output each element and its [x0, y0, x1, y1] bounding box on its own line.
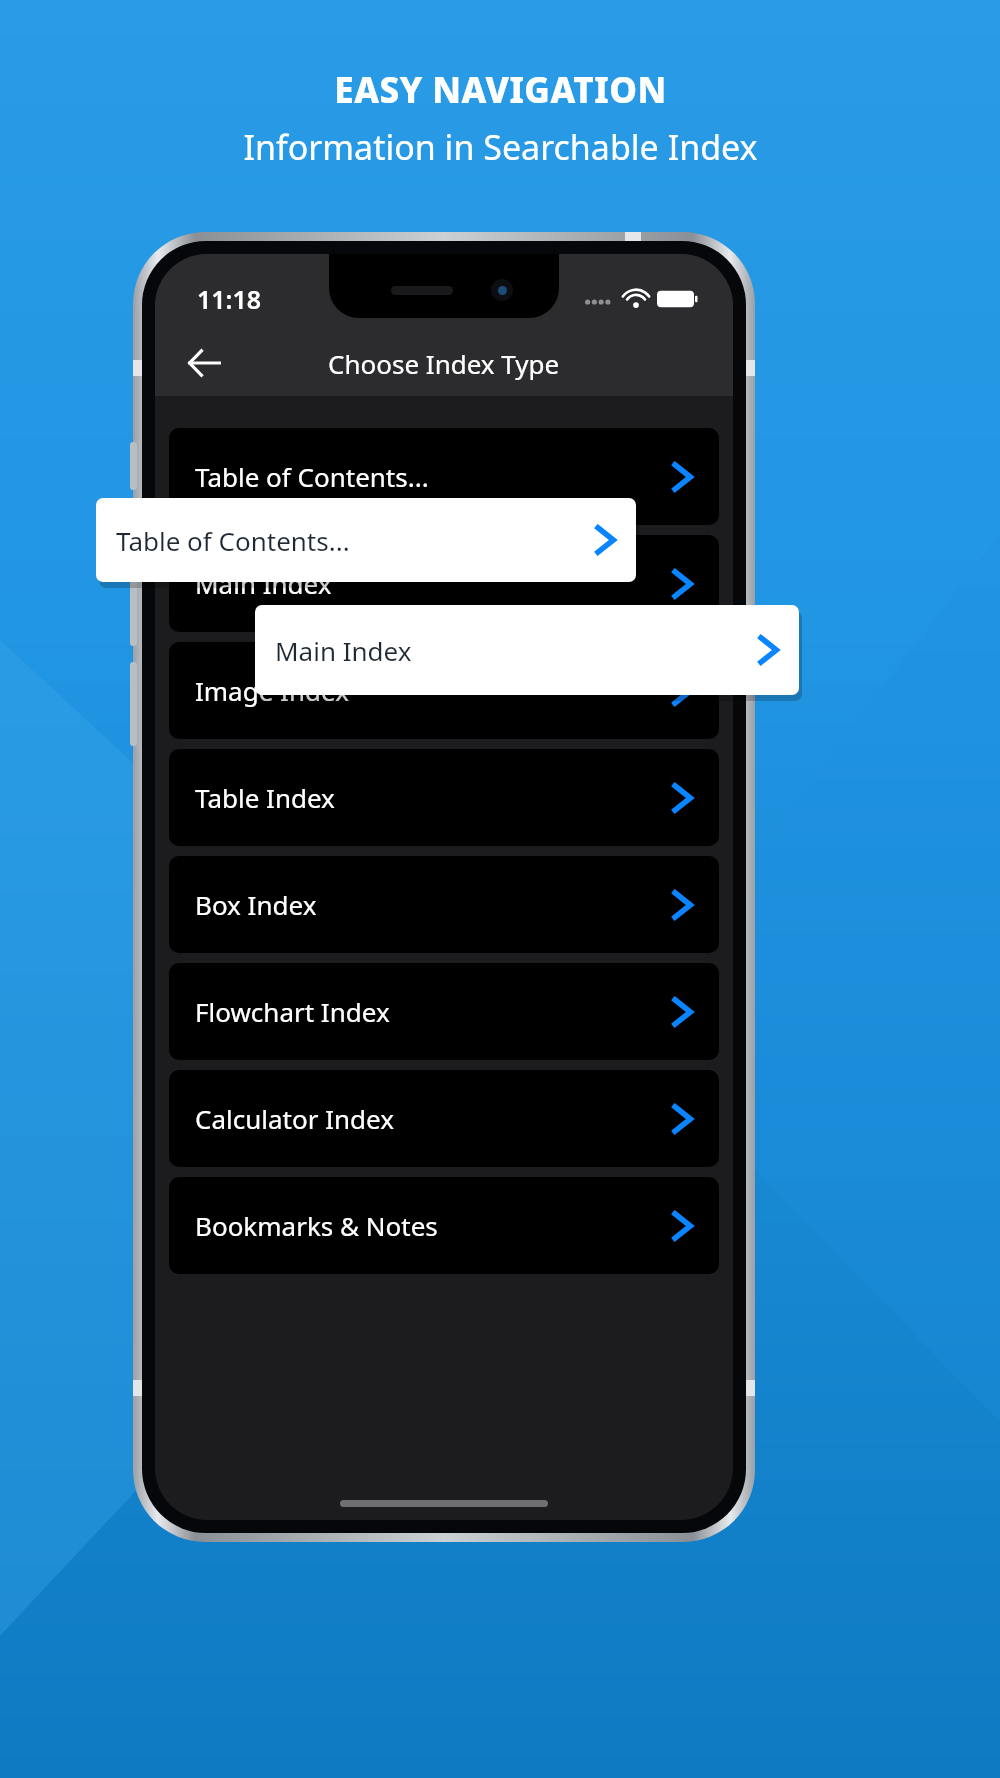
staticText: Box Index	[195, 887, 671, 922]
button[interactable]: Calculator Index	[169, 1070, 719, 1167]
staticText: Image Index	[195, 673, 671, 708]
staticText: Bookmarks & Notes	[195, 1208, 671, 1243]
button[interactable]: Main Index	[255, 605, 799, 695]
staticText: EASY NAVIGATION	[334, 66, 667, 114]
staticText: 11:18	[197, 282, 262, 316]
button[interactable]: Back	[177, 336, 231, 390]
staticText: Calculator Index	[195, 1101, 671, 1136]
button[interactable]: Main Index	[169, 535, 719, 632]
button[interactable]: Flowchart Index	[169, 963, 719, 1060]
button[interactable]: Image Index	[169, 642, 719, 739]
staticText: Table Index	[195, 780, 671, 815]
button[interactable]: Table Index	[169, 749, 719, 846]
staticText: Information in Searchable Index	[243, 124, 758, 170]
staticText: Main Index	[275, 633, 757, 668]
staticText: Flowchart Index	[195, 994, 671, 1029]
button[interactable]: Bookmarks & Notes	[169, 1177, 719, 1274]
staticText: Table of Contents...	[195, 459, 671, 494]
staticText: Choose Index Type	[328, 346, 560, 381]
button[interactable]: Table of Contents...	[169, 428, 719, 525]
staticText: Table of Contents...	[116, 523, 594, 558]
button[interactable]: Box Index	[169, 856, 719, 953]
staticText: Main Index	[195, 566, 671, 601]
button[interactable]: Table of Contents...	[96, 498, 636, 582]
